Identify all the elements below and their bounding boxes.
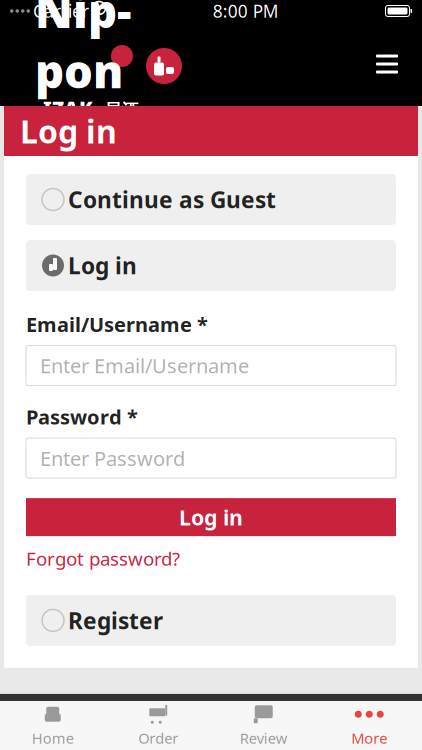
- staticText: IZAKAYA: [43, 95, 99, 148]
- staticText: Continue as Guest: [68, 184, 276, 214]
- staticText: Password *: [26, 404, 138, 430]
- staticText: Order: [138, 728, 178, 748]
- staticText: Review: [240, 728, 288, 748]
- staticText: Log in: [179, 503, 243, 531]
- staticText: Forgot password?: [26, 546, 180, 571]
- button[interactable]: Review: [211, 701, 316, 749]
- staticText: Log in: [68, 250, 137, 280]
- button[interactable]: Log in: [26, 240, 396, 291]
- button[interactable]: Menu: [364, 42, 410, 85]
- staticText: Enter Email/Username: [40, 352, 249, 379]
- button[interactable]: Continue as Guest: [26, 174, 396, 225]
- button[interactable]: Register: [26, 595, 396, 646]
- staticText: Carrier: [33, 0, 89, 22]
- button[interactable]: Log in: [26, 498, 396, 536]
- staticText: Home: [32, 728, 74, 748]
- staticText: Register: [68, 605, 163, 635]
- button[interactable]: Home: [0, 701, 105, 749]
- staticText: Nippon: [35, 0, 131, 101]
- staticText: Email/Username *: [26, 311, 208, 338]
- button[interactable]: Enter Email/Username: [26, 346, 396, 386]
- staticText: Enter Password: [40, 445, 185, 471]
- button[interactable]: Order: [105, 701, 211, 749]
- button[interactable]: Enter Password: [26, 438, 396, 478]
- staticText: 居酒屋: [104, 100, 138, 142]
- staticText: Log in: [20, 110, 117, 152]
- button[interactable]: More: [316, 701, 422, 749]
- button[interactable]: Forgot password?: [26, 536, 396, 571]
- staticText: More: [351, 728, 387, 748]
- staticText: 8:00 PM: [213, 0, 279, 22]
